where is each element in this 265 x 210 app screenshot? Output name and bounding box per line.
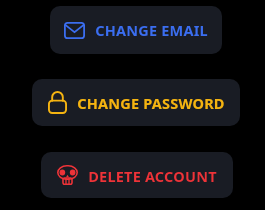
button[interactable]: DELETE ACCOUNT (41, 152, 233, 198)
staticText: CHANGE EMAIL (95, 20, 208, 40)
staticText: CHANGE PASSWORD (77, 93, 225, 113)
button[interactable]: CHANGE PASSWORD (32, 79, 240, 126)
staticText: DELETE ACCOUNT (88, 166, 217, 186)
button[interactable]: CHANGE EMAIL (50, 6, 222, 54)
